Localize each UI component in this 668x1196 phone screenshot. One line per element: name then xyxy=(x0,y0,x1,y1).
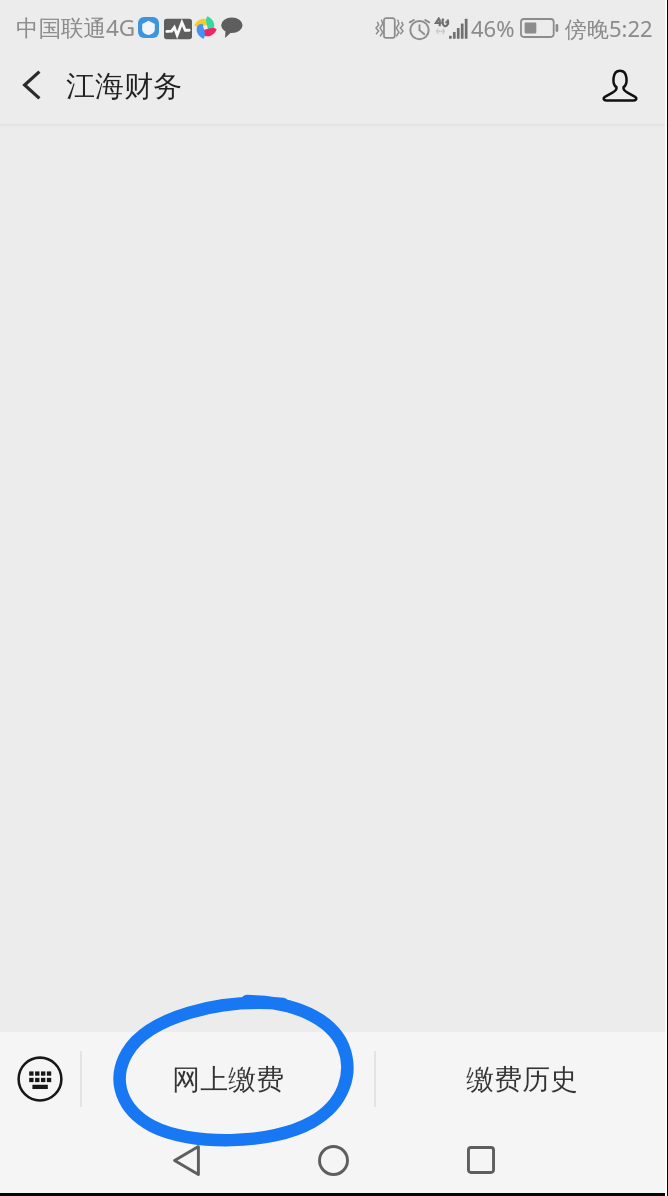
button[interactable]: Keyboard xyxy=(0,1032,80,1126)
staticText: 46% xyxy=(471,13,515,43)
staticText: 江海财务 xyxy=(66,68,182,105)
button[interactable]: Home xyxy=(302,1129,364,1191)
staticText: 傍晚5:22 xyxy=(565,13,653,43)
staticText: 网上缴费 xyxy=(172,1062,284,1097)
staticText: 中国联通4G xyxy=(16,12,136,43)
button[interactable]: 网上缴费 xyxy=(82,1032,374,1126)
staticText: 缴费历史 xyxy=(466,1062,578,1097)
button[interactable]: Recents xyxy=(450,1129,512,1191)
button[interactable]: 缴费历史 xyxy=(376,1032,668,1126)
button[interactable]: Back xyxy=(155,1129,217,1191)
button[interactable]: Account xyxy=(589,55,651,115)
button[interactable]: Back xyxy=(4,55,60,115)
